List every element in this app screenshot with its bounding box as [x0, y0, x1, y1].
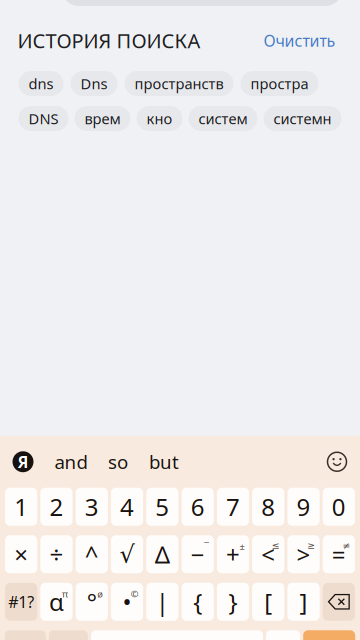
- staticText: ≤: [272, 540, 280, 551]
- staticText: 6: [191, 491, 205, 523]
- staticText: ]: [300, 586, 308, 618]
- button[interactable]: so: [96, 445, 140, 479]
- button[interactable]: 9: [287, 488, 320, 526]
- staticText: [: [264, 586, 272, 618]
- staticText: |: [156, 586, 169, 618]
- button[interactable]: }: [217, 583, 249, 621]
- button[interactable]: 1: [5, 488, 37, 526]
- staticText: 8: [261, 491, 275, 523]
- staticText: °: [87, 586, 97, 618]
- staticText: ‾: [204, 540, 209, 553]
- button[interactable]: |: [146, 583, 178, 621]
- button[interactable]: кно: [136, 106, 182, 131]
- staticText: π: [62, 588, 68, 600]
- button[interactable]: 6: [182, 488, 214, 526]
- staticText: =: [332, 538, 346, 570]
- staticText: but: [149, 449, 179, 474]
- button[interactable]: −: [182, 535, 214, 573]
- button[interactable]: #1?: [5, 583, 37, 621]
- staticText: >: [297, 538, 311, 570]
- staticText: Dns: [80, 74, 107, 93]
- button[interactable]: 2: [40, 488, 73, 526]
- button[interactable]: <: [252, 535, 284, 573]
- button[interactable]: √: [111, 535, 143, 573]
- button[interactable]: °: [76, 583, 108, 621]
- button[interactable]: 7: [217, 488, 249, 526]
- staticText: Я: [17, 451, 28, 472]
- button[interactable]: =: [323, 535, 355, 573]
- staticText: пространств: [134, 74, 223, 93]
- button[interactable]: простра: [240, 71, 318, 96]
- staticText: ×: [14, 538, 28, 570]
- button[interactable]: 5: [146, 488, 178, 526]
- button[interactable]: ×: [5, 535, 37, 573]
- staticText: 4: [120, 491, 134, 523]
- button[interactable]: •: [111, 583, 143, 621]
- button[interactable]: ÷: [40, 535, 73, 573]
- button[interactable]: ]: [287, 583, 320, 621]
- button[interactable]: dns: [18, 71, 63, 96]
- staticText: 1: [14, 491, 28, 523]
- staticText: систем: [198, 109, 247, 128]
- button[interactable]: врем: [74, 106, 130, 131]
- button[interactable]: +: [217, 535, 249, 573]
- button[interactable]: DNS: [18, 106, 68, 131]
- staticText: врем: [84, 109, 120, 128]
- button[interactable]: 4: [111, 488, 143, 526]
- staticText: ≥: [307, 540, 315, 551]
- button[interactable]: 3: [76, 488, 108, 526]
- button[interactable]: Dns: [70, 71, 117, 96]
- button[interactable]: Yandex: [0, 440, 46, 484]
- staticText: ≠: [342, 540, 350, 551]
- staticText: ±: [240, 540, 245, 553]
- staticText: системн: [273, 109, 331, 128]
- button[interactable]: [266, 630, 300, 640]
- button[interactable]: [: [252, 583, 284, 621]
- button[interactable]: Emoji: [314, 440, 360, 484]
- staticText: <: [261, 538, 275, 570]
- staticText: α: [49, 586, 64, 618]
- button[interactable]: Очистить: [249, 21, 335, 60]
- staticText: dns: [28, 74, 53, 93]
- staticText: DNS: [28, 109, 58, 128]
- button[interactable]: систем: [188, 106, 257, 131]
- button[interactable]: Δ: [146, 535, 178, 573]
- staticText: {: [193, 586, 202, 618]
- staticText: −: [191, 538, 205, 570]
- staticText: √: [120, 541, 135, 568]
- button[interactable]: системн: [263, 106, 341, 131]
- staticText: ^: [85, 538, 99, 570]
- button[interactable]: {: [182, 583, 214, 621]
- staticText: простра: [250, 74, 308, 93]
- button[interactable]: [91, 630, 263, 640]
- staticText: so: [108, 449, 128, 474]
- staticText: 5: [155, 491, 169, 523]
- button[interactable]: 8: [252, 488, 284, 526]
- button[interactable]: ^: [76, 535, 108, 573]
- staticText: 7: [226, 491, 240, 523]
- staticText: +: [226, 538, 240, 570]
- staticText: and: [54, 449, 87, 474]
- button[interactable]: and: [46, 445, 96, 479]
- button[interactable]: пространств: [124, 71, 233, 96]
- staticText: #1?: [8, 591, 34, 612]
- staticText: ©: [131, 588, 139, 600]
- staticText: }: [228, 586, 237, 618]
- button[interactable]: 0: [323, 488, 355, 526]
- staticText: ø: [97, 588, 103, 600]
- button[interactable]: α: [40, 583, 73, 621]
- button[interactable]: but: [140, 445, 188, 479]
- button[interactable]: Backspace: [323, 583, 355, 621]
- staticText: 2: [49, 491, 63, 523]
- staticText: 0: [332, 491, 346, 523]
- staticText: Очистить: [263, 30, 335, 51]
- button[interactable]: [303, 630, 355, 640]
- staticText: Δ: [155, 538, 170, 570]
- staticText: ÷: [49, 538, 63, 570]
- staticText: •: [123, 586, 132, 618]
- staticText: кно: [146, 109, 172, 128]
- staticText: ИСТОРИЯ ПОИСКА: [17, 27, 200, 54]
- button[interactable]: >: [287, 535, 320, 573]
